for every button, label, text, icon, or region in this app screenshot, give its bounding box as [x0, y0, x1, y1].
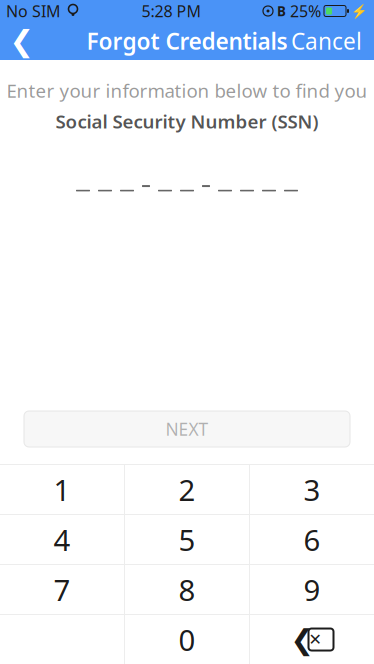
staticText: 3 — [303, 470, 320, 509]
staticText: 5 — [178, 520, 195, 559]
staticText: 9 — [303, 570, 320, 609]
staticText: Forgot Credentials — [86, 26, 287, 56]
button[interactable]: 7 — [0, 565, 124, 614]
button[interactable]: 5 — [125, 515, 249, 564]
staticText: Social Security Number (SSN) — [55, 109, 318, 134]
staticText: ✕ — [308, 630, 321, 649]
staticText: 25% — [290, 0, 321, 22]
button[interactable]: Delete — [250, 615, 374, 664]
staticText: 7 — [53, 570, 70, 609]
button[interactable]: 1 — [0, 465, 124, 514]
staticText: B — [277, 2, 286, 20]
staticText: 4 — [53, 520, 70, 559]
staticText: 1 — [53, 470, 70, 509]
staticText: 2 — [178, 470, 195, 509]
staticText: No SIM — [6, 0, 61, 22]
staticText: 8 — [178, 570, 195, 609]
staticText: NEXT — [165, 417, 208, 440]
staticText: 0 — [178, 620, 195, 659]
staticText: ❮ — [290, 624, 313, 655]
button[interactable]: 0 — [125, 615, 249, 664]
staticText: ❮ — [9, 24, 34, 58]
button[interactable]: 8 — [125, 565, 249, 614]
button[interactable]: 4 — [0, 515, 124, 564]
staticText: 5:28 PM — [141, 0, 201, 22]
button[interactable]: Back — [0, 22, 44, 60]
button[interactable]: 2 — [125, 465, 249, 514]
button[interactable]: NEXT — [24, 411, 350, 447]
button[interactable]: 3 — [250, 465, 374, 514]
button[interactable]: Cancel — [279, 22, 374, 60]
staticText: Enter your information below to find you — [6, 78, 367, 103]
button[interactable]: 6 — [250, 515, 374, 564]
button[interactable]: 9 — [250, 565, 374, 614]
staticText: ⚡ — [351, 3, 368, 19]
staticText: Cancel — [291, 26, 362, 56]
staticText: 6 — [303, 520, 320, 559]
